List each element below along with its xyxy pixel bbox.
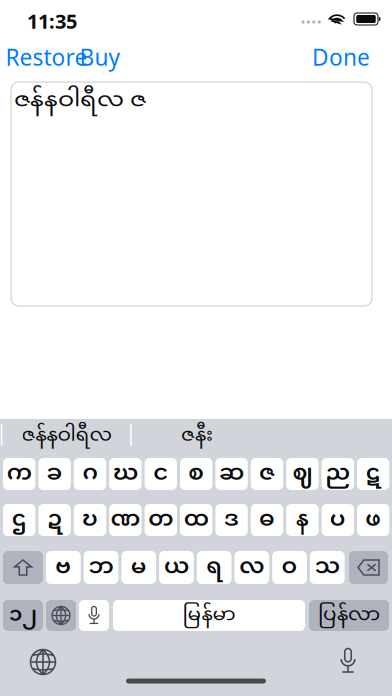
staticText: Buy	[79, 42, 120, 72]
staticText: သ	[315, 552, 340, 583]
button[interactable]: စ	[180, 458, 212, 490]
button[interactable]: Next keyboard	[22, 641, 63, 682]
staticText: ဖ	[365, 505, 381, 535]
button[interactable]: ထ	[180, 504, 212, 536]
button[interactable]: Done	[313, 37, 369, 77]
button[interactable]: န	[286, 504, 319, 536]
staticText: ဍ	[47, 505, 62, 535]
button[interactable]: လ	[234, 551, 269, 584]
button[interactable]: Restore	[11, 37, 81, 77]
staticText: ဇနီး	[181, 422, 213, 450]
staticText: ထ	[184, 505, 209, 535]
staticText: ယ	[164, 552, 189, 583]
staticText: ဋ	[366, 459, 381, 489]
button[interactable]: ဇနီး	[133, 417, 261, 455]
staticText: ဈ	[292, 459, 312, 489]
staticText: ည	[325, 459, 350, 489]
button[interactable]: Buy	[80, 37, 120, 77]
button[interactable]: Shift	[3, 551, 43, 584]
button[interactable]: သ	[310, 551, 345, 584]
button[interactable]: ဘ	[84, 551, 118, 584]
button[interactable]: ဗ	[46, 551, 81, 584]
staticText: ဒ	[224, 505, 239, 535]
button[interactable]: ဇန်နဝါရီလ	[3, 417, 131, 455]
button[interactable]: Next keyboard	[46, 600, 76, 631]
staticText: ဃ	[113, 459, 138, 489]
staticText: တ	[148, 505, 173, 535]
staticText: Done	[312, 42, 370, 72]
button[interactable]: Delete	[349, 551, 388, 584]
button[interactable]: ဋ	[357, 458, 389, 490]
button[interactable]: ဌ	[3, 504, 35, 536]
staticText: ဗ	[55, 552, 71, 583]
button[interactable]: ဃ	[109, 458, 142, 490]
button[interactable]: တ	[145, 504, 177, 536]
button[interactable]: ဂ	[74, 458, 106, 490]
staticText: မြန်မာ	[182, 602, 235, 629]
button[interactable]: ဒ	[215, 504, 248, 536]
button[interactable]: ပြန်လာ	[309, 600, 389, 631]
button[interactable]: Dictation	[331, 640, 365, 681]
button[interactable]: ဈ	[286, 458, 319, 490]
button[interactable]: က	[3, 458, 35, 490]
staticText: ရ	[206, 552, 222, 583]
staticText: ဇန်နဝါရီလ ဇ	[14, 85, 146, 117]
button[interactable]: ဎ	[74, 504, 106, 536]
staticText: 11:35	[27, 7, 77, 35]
button[interactable]: င	[145, 458, 177, 490]
staticText: န	[296, 505, 309, 535]
staticText: ခ	[47, 459, 63, 489]
button[interactable]: ခ	[38, 458, 71, 490]
staticText: စ	[188, 459, 204, 489]
button[interactable]: ပ	[322, 504, 354, 536]
staticText: ဆ	[219, 459, 244, 489]
staticText: ပ	[330, 505, 346, 535]
staticText: မ	[131, 552, 147, 583]
button[interactable]: ဏ	[109, 504, 142, 536]
staticText: ဌ	[12, 505, 27, 535]
staticText: ဝ	[282, 552, 298, 583]
button[interactable]: မ	[121, 551, 156, 584]
button[interactable]: ဍ	[38, 504, 71, 536]
staticText: င	[153, 459, 168, 489]
staticText: Restore	[5, 42, 87, 72]
button[interactable]: ယ	[159, 551, 194, 584]
staticText: လ	[239, 552, 264, 583]
button[interactable]: ဝ	[272, 551, 307, 584]
staticText: ဇ	[259, 459, 275, 489]
staticText: ပြန်လာ	[318, 602, 380, 629]
button[interactable]: ဆ	[215, 458, 248, 490]
staticText: ဇန်နဝါရီလ	[21, 422, 112, 450]
staticText: ၁၂	[9, 601, 37, 630]
button[interactable]: Dictation	[79, 600, 109, 631]
button[interactable]: ဓ	[251, 504, 283, 536]
button[interactable]: ဇ	[251, 458, 283, 490]
staticText: ဎ	[82, 505, 98, 535]
button[interactable]: ည	[322, 458, 354, 490]
button[interactable]: ဖ	[357, 504, 389, 536]
staticText: ဏ	[110, 505, 140, 535]
staticText: ဘ	[89, 552, 114, 583]
button[interactable]: မြန်မာ	[113, 600, 305, 631]
staticText: က	[7, 459, 32, 489]
button[interactable]: ၁၂	[3, 600, 43, 631]
staticText: ဓ	[259, 505, 275, 535]
button[interactable]: ရ	[197, 551, 231, 584]
staticText: ဂ	[82, 459, 97, 489]
